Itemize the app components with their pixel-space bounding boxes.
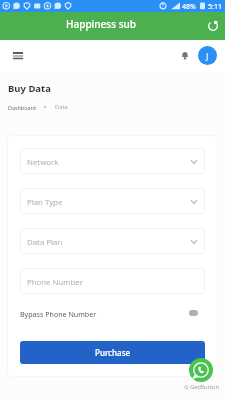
button[interactable]: Bypass Phone Number toggle (189, 310, 198, 316)
button[interactable]: Open navigation menu (12, 51, 24, 61)
staticText: Dashboard (8, 104, 36, 111)
staticText: Data Plan (27, 237, 63, 248)
button[interactable]: Plan Type (20, 188, 205, 214)
button[interactable]: Chat on WhatsApp (189, 358, 213, 382)
button[interactable]: Network (20, 148, 205, 174)
staticText: Data (55, 103, 68, 111)
staticText: Phone Number (27, 277, 83, 288)
button[interactable]: Purchase (20, 341, 205, 364)
button[interactable]: Notifications (180, 51, 190, 60)
button[interactable]: Refresh (204, 17, 222, 35)
staticText: J (206, 50, 209, 62)
staticText: Plan Type (27, 197, 63, 208)
staticText: Purchase (95, 347, 131, 358)
button[interactable]: J (198, 46, 217, 65)
staticText: 48% (182, 2, 196, 12)
button[interactable]: Phone Number (20, 268, 205, 294)
staticText: Happiness sub (66, 17, 136, 31)
button[interactable]: Data Plan (20, 228, 205, 254)
staticText: Buy Data (8, 82, 51, 95)
staticText: 5:11 (208, 2, 222, 12)
staticText: GetButton (190, 383, 220, 391)
staticText: Network (27, 157, 59, 168)
staticText: Bypass Phone Number (20, 309, 97, 319)
